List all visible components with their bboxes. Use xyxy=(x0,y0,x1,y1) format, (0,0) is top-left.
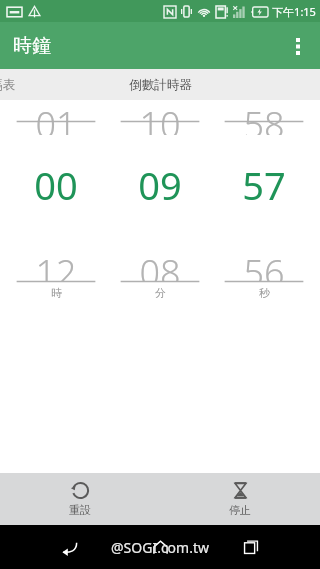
staticText: 倒數計時器 xyxy=(129,77,192,93)
button[interactable]: Back xyxy=(47,525,91,569)
staticText: 重設 xyxy=(69,503,91,517)
button[interactable]: Reset xyxy=(0,473,160,525)
staticText: 時鐘 xyxy=(13,34,51,58)
staticText: 01 xyxy=(35,100,77,135)
staticText: 碼表 xyxy=(0,77,15,93)
staticText: 時 xyxy=(51,286,62,300)
staticText: @SOGI.com.tw xyxy=(111,538,209,557)
button[interactable]: 倒數計時器 xyxy=(95,69,225,100)
staticText: 57 xyxy=(242,159,286,211)
staticText: 10 xyxy=(139,100,181,135)
staticText: 09 xyxy=(138,159,182,211)
staticText: 分 xyxy=(155,286,166,300)
staticText: 00 xyxy=(34,159,78,211)
staticText: 08 xyxy=(139,248,181,282)
staticText: 秒 xyxy=(259,286,270,300)
button[interactable]: 01 xyxy=(8,100,104,300)
staticText: 下午1:15 xyxy=(272,4,316,19)
button[interactable]: More options xyxy=(276,24,320,68)
button[interactable]: 58 xyxy=(216,100,312,300)
staticText: 12 xyxy=(35,248,77,282)
button[interactable]: 10 xyxy=(112,100,208,300)
staticText: 58 xyxy=(243,100,285,135)
staticText: 56 xyxy=(243,248,285,282)
button[interactable]: Home xyxy=(138,525,182,569)
button[interactable]: Recents xyxy=(229,525,273,569)
staticText: 停止 xyxy=(229,503,251,517)
button[interactable]: 碼表 xyxy=(0,69,38,100)
button[interactable]: Stop xyxy=(160,473,320,525)
